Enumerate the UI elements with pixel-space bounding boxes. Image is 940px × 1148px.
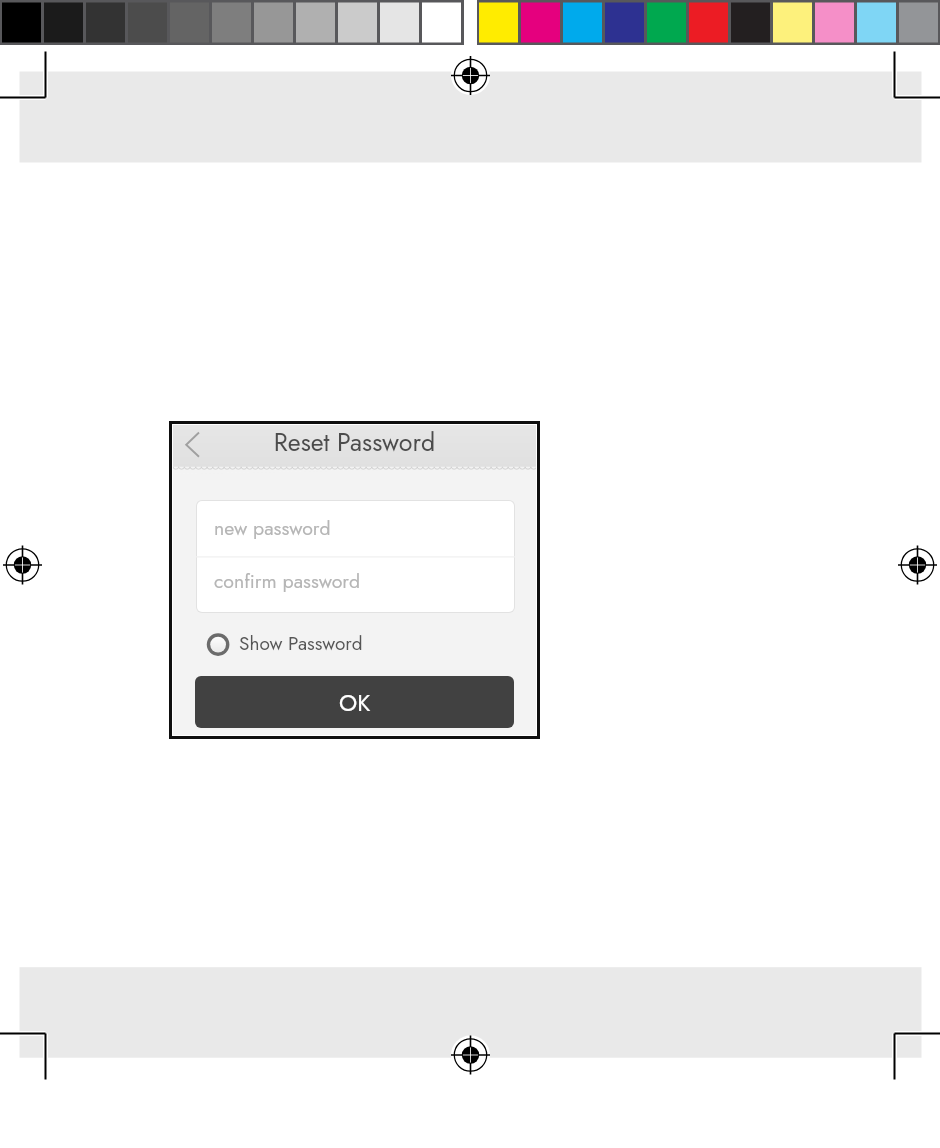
staticText: confirm password [214, 567, 361, 595]
staticText: Show Password [239, 630, 363, 657]
button[interactable]: Back [180, 426, 206, 464]
staticText: Reset Password [173, 425, 536, 460]
button[interactable]: Show Password [204, 630, 364, 660]
button[interactable]: OK [195, 676, 514, 728]
staticText: OK [339, 686, 371, 719]
button[interactable]: confirm password [196, 557, 515, 613]
button[interactable]: new password [196, 500, 515, 557]
staticText: new password [214, 514, 331, 542]
